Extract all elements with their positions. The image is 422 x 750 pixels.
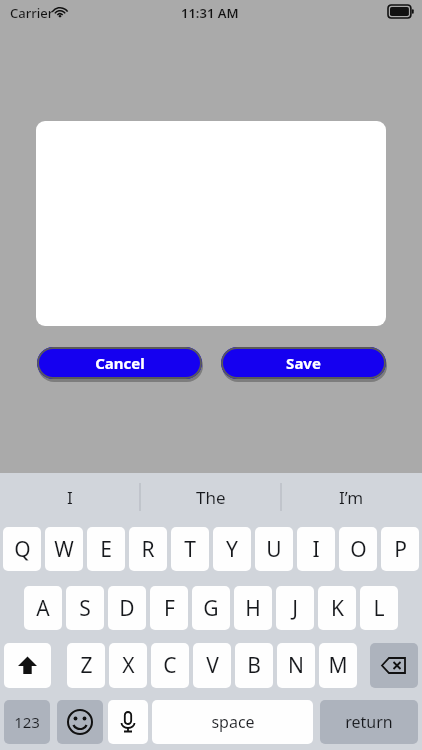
staticText: S <box>79 594 91 623</box>
button[interactable]: K <box>318 586 356 630</box>
button[interactable]: return <box>320 700 418 744</box>
button[interactable]: U <box>255 527 293 571</box>
button[interactable]: space <box>152 700 313 744</box>
staticText: Y <box>226 535 238 564</box>
staticText: 11:31 AM <box>181 4 239 22</box>
button[interactable]: E <box>87 527 125 571</box>
staticText: P <box>394 535 407 564</box>
staticText: I <box>67 486 73 509</box>
button[interactable]: Cancel <box>37 347 202 379</box>
button[interactable]: O <box>339 527 377 571</box>
staticText: E <box>100 535 112 564</box>
staticText: Z <box>80 651 93 680</box>
button[interactable]: Shift <box>4 643 51 688</box>
button[interactable]: 123 <box>4 700 50 744</box>
button[interactable]: G <box>192 586 230 630</box>
staticText: J <box>292 594 298 623</box>
button[interactable]: The <box>151 473 271 521</box>
staticText: space <box>211 711 255 733</box>
button[interactable]: I’m <box>291 473 411 521</box>
staticText: N <box>288 651 304 680</box>
button[interactable]: N <box>277 643 315 688</box>
staticText: Q <box>14 535 31 564</box>
staticText: Carrier <box>10 4 54 22</box>
button[interactable]: I <box>10 473 130 521</box>
button[interactable]: D <box>108 586 146 630</box>
staticText: H <box>245 594 261 623</box>
staticText: Cancel <box>95 353 145 373</box>
button[interactable]: V <box>193 643 231 688</box>
staticText: V <box>206 651 219 680</box>
button[interactable]: I <box>297 527 335 571</box>
button[interactable]: A <box>24 586 62 630</box>
staticText: K <box>331 594 344 623</box>
button[interactable]: T <box>171 527 209 571</box>
staticText: G <box>203 594 219 623</box>
button[interactable]: W <box>45 527 83 571</box>
button[interactable]: F <box>150 586 188 630</box>
staticText: Save <box>286 353 321 373</box>
staticText: C <box>163 651 177 680</box>
staticText: The <box>196 486 226 509</box>
staticText: R <box>141 535 155 564</box>
staticText: O <box>350 535 367 564</box>
button[interactable]: Y <box>213 527 251 571</box>
button[interactable]: P <box>381 527 419 571</box>
staticText: U <box>266 535 282 564</box>
button[interactable]: C <box>151 643 189 688</box>
staticText: B <box>247 651 261 680</box>
staticText: I’m <box>339 486 364 509</box>
button[interactable]: L <box>360 586 398 630</box>
staticText: 123 <box>14 712 40 732</box>
staticText: A <box>36 594 50 623</box>
button[interactable]: Q <box>3 527 41 571</box>
button[interactable]: B <box>235 643 273 688</box>
staticText: return <box>345 711 393 733</box>
button[interactable]: Emoji <box>57 700 103 744</box>
staticText: L <box>373 594 385 623</box>
button[interactable]: Dictate <box>108 700 148 744</box>
button[interactable]: H <box>234 586 272 630</box>
button[interactable]: X <box>109 643 147 688</box>
staticText: I <box>312 535 320 564</box>
button[interactable]: Z <box>67 643 105 688</box>
staticText: X <box>122 651 135 680</box>
staticText: D <box>119 594 135 623</box>
button[interactable]: S <box>66 586 104 630</box>
button[interactable]: M <box>319 643 357 688</box>
button[interactable]: Backspace <box>370 643 418 688</box>
staticText: M <box>328 651 348 680</box>
staticText: F <box>164 594 175 623</box>
staticText: T <box>184 535 196 564</box>
button[interactable]: Save <box>221 347 386 379</box>
button[interactable]: R <box>129 527 167 571</box>
staticText: W <box>54 535 74 564</box>
button[interactable]: J <box>276 586 314 630</box>
